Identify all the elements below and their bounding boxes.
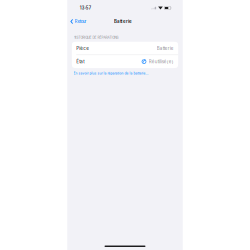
button[interactable]: En savoir plus sur la réparation de la b…: [73, 71, 148, 75]
staticText: Pièce: [76, 46, 89, 51]
staticText: En savoir plus sur la réparation de la b…: [73, 71, 148, 75]
staticText: HISTORIQUE DE RÉPARATIONS: [73, 36, 118, 40]
staticText: Batterie: [157, 46, 174, 51]
staticText: 13:57: [80, 5, 91, 10]
staticText: Retour: [75, 19, 87, 24]
staticText: Batterie: [114, 19, 132, 24]
button[interactable]: Pièce: [72, 42, 178, 55]
staticText: Réutilisé(e): [149, 59, 174, 64]
button[interactable]: Retour: [69, 17, 88, 25]
button[interactable]: État: [72, 55, 178, 68]
staticText: État: [76, 59, 84, 64]
